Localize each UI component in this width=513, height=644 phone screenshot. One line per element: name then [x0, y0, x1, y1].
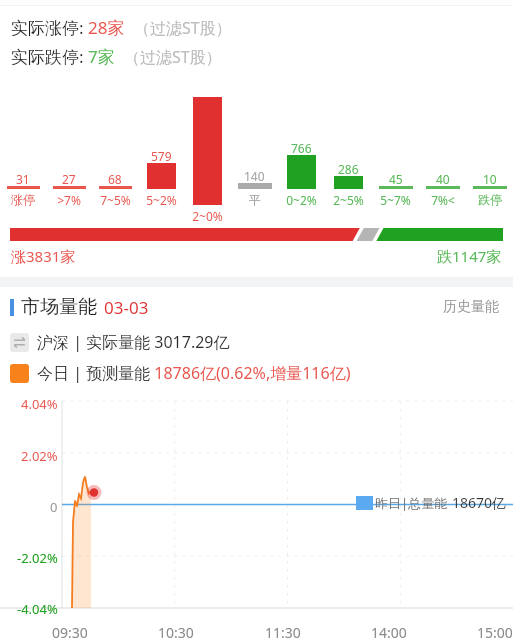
staticText: 0~2% [286, 192, 317, 208]
button[interactable]: 766 [278, 82, 325, 222]
staticText: 28家 [88, 16, 125, 39]
staticText: 579 [151, 148, 172, 163]
staticText: 2~0% [192, 208, 223, 222]
staticText: 31 [16, 171, 30, 186]
staticText: 140 [244, 168, 265, 183]
staticText: 2.02% [21, 447, 58, 461]
staticText: 15:00 [477, 623, 513, 642]
staticText: 跌停 [478, 192, 502, 207]
staticText: 4.04% [21, 395, 58, 409]
staticText: -2.02% [17, 549, 58, 563]
staticText: 03-03 [104, 296, 149, 319]
staticText: 涨停 [11, 192, 35, 207]
button[interactable]: 2~0% [184, 82, 231, 222]
staticText: 市场量能 [21, 295, 97, 319]
staticText: 2~5% [333, 192, 364, 208]
button[interactable]: 历史量能 [439, 294, 503, 320]
button[interactable]: 沪深切换 [10, 327, 513, 357]
button[interactable]: 31 [0, 82, 46, 222]
staticText: 09:30 [52, 623, 88, 642]
button[interactable]: 286 [325, 82, 372, 222]
staticText: 40 [436, 171, 450, 186]
button[interactable]: 今日 | 预测量能 18786亿(0.62%,增量116亿) [10, 357, 513, 389]
button[interactable]: 45 [372, 82, 419, 222]
staticText: 5~2% [146, 192, 177, 208]
staticText: 0 [50, 498, 58, 512]
staticText: （过滤ST股） [124, 46, 222, 68]
staticText: 10 [483, 171, 497, 186]
staticText: （过滤ST股） [134, 17, 232, 39]
staticText: 沪深 | 实际量能 3017.29亿 [37, 331, 230, 353]
staticText: 平 [249, 192, 261, 207]
staticText: 昨日|总量能 [375, 494, 448, 512]
button[interactable] [10, 228, 503, 241]
staticText: 历史量能 [443, 298, 499, 316]
other: 沪深切换 [10, 333, 29, 352]
staticText: >7% [57, 192, 81, 208]
button[interactable]: 140 [231, 82, 278, 222]
staticText: 7%< [431, 192, 455, 208]
staticText: 11:30 [265, 623, 301, 642]
button[interactable]: 40 [419, 82, 466, 222]
staticText: 7~5% [100, 192, 131, 208]
button[interactable]: 昨日|总量能 [356, 493, 507, 512]
button[interactable]: 68 [92, 82, 138, 222]
staticText: 18670亿 [452, 493, 507, 512]
staticText: 286 [338, 161, 359, 176]
staticText: -4.04% [17, 600, 58, 614]
staticText: 实际跌停: [11, 45, 88, 68]
staticText: 跌1147家 [437, 246, 502, 266]
staticText: 14:00 [371, 623, 407, 642]
staticText: 10:30 [158, 623, 194, 642]
staticText: 实际涨停: [11, 16, 88, 39]
button[interactable]: 579 [138, 82, 184, 222]
staticText: 27 [62, 171, 76, 186]
staticText: 45 [389, 171, 403, 186]
button[interactable]: 10 [466, 82, 513, 222]
staticText: 今日 | 预测量能 18786亿(0.62%,增量116亿) [37, 362, 351, 384]
staticText: 7家 [88, 45, 115, 68]
staticText: 68 [108, 171, 122, 186]
staticText: 766 [291, 140, 312, 155]
staticText: 涨3831家 [11, 246, 76, 266]
staticText: 5~7% [380, 192, 411, 208]
button[interactable]: 27 [46, 82, 92, 222]
